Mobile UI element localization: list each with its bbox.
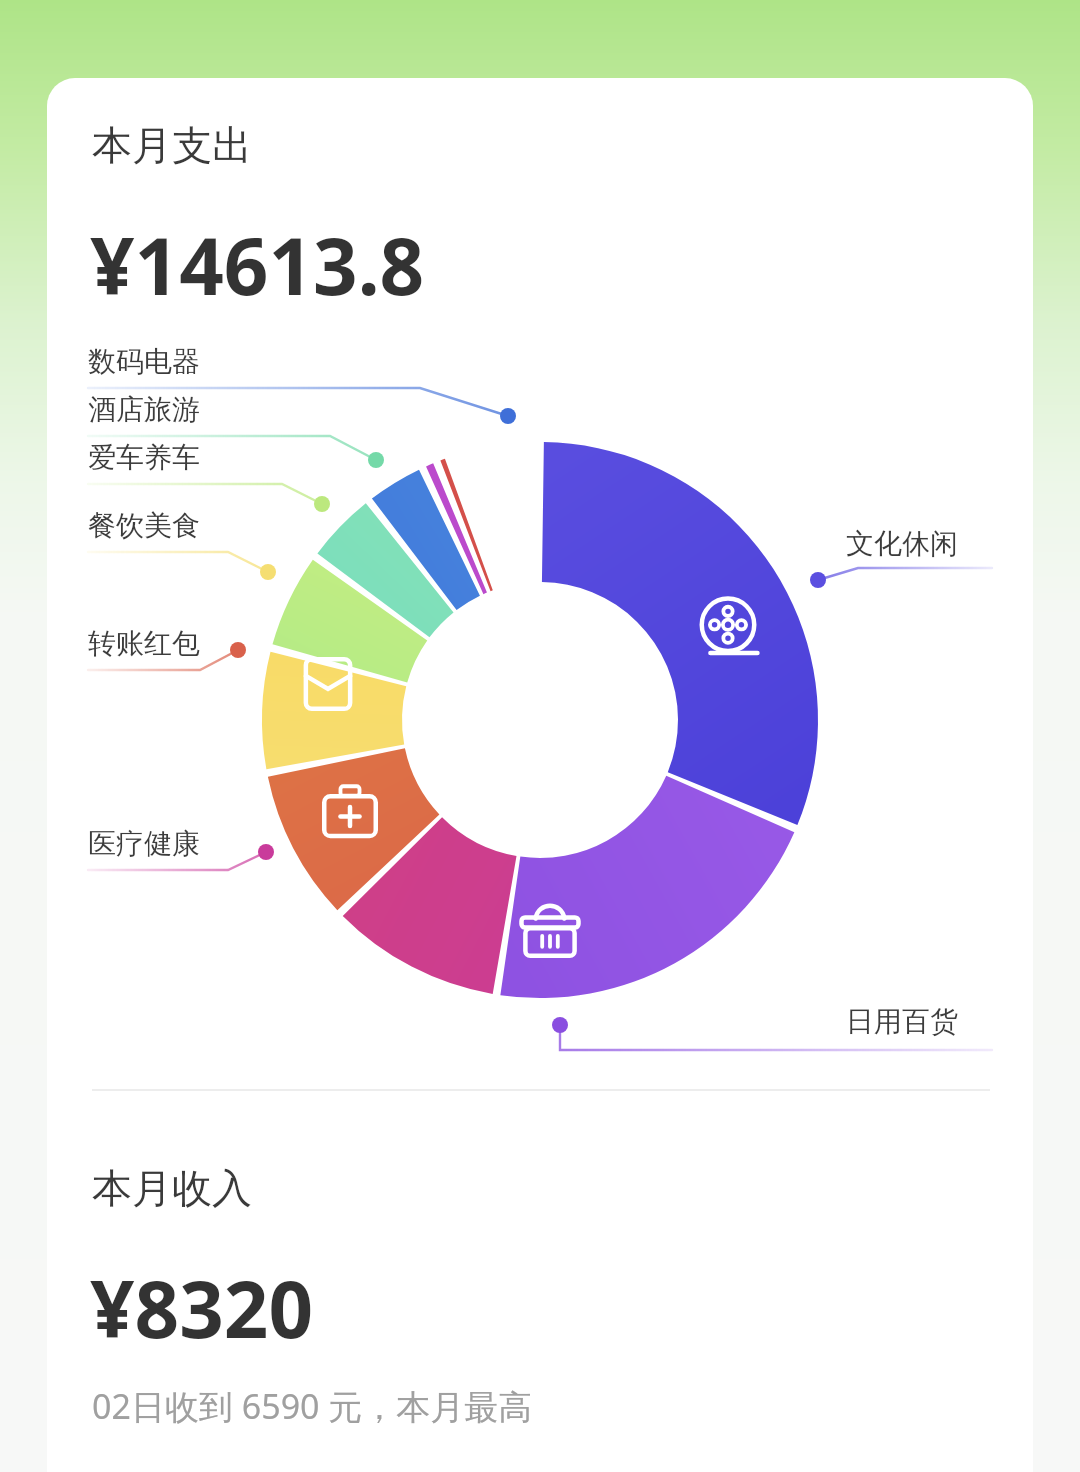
button[interactable]: [47, 78, 1033, 1472]
staticText: ¥8320: [90, 1255, 314, 1361]
staticText: ¥14613.8: [90, 212, 425, 318]
staticText: 文化休闲: [846, 526, 958, 561]
other: 本月支出分类环形图: [0, 0, 1080, 1472]
staticText: 本月收入: [92, 1163, 252, 1213]
staticText: 数码电器: [88, 344, 200, 379]
staticText: 本月支出: [92, 120, 252, 170]
button[interactable]: 数码电器: [88, 344, 200, 379]
staticText: 酒店旅游: [88, 392, 200, 427]
button[interactable]: 爱车养车: [88, 440, 200, 475]
staticText: 02日收到 6590 元，本月最高: [92, 1383, 533, 1429]
button[interactable]: 日用百货: [846, 1004, 958, 1039]
staticText: 餐饮美食: [88, 508, 200, 543]
button[interactable]: 转账红包: [88, 626, 200, 661]
button[interactable]: 餐饮美食: [88, 508, 200, 543]
button[interactable]: 文化休闲: [846, 526, 958, 561]
staticText: 爱车养车: [88, 440, 200, 475]
staticText: 转账红包: [88, 626, 200, 661]
staticText: 日用百货: [846, 1004, 958, 1039]
button[interactable]: 酒店旅游: [88, 392, 200, 427]
button[interactable]: 医疗健康: [88, 826, 200, 861]
staticText: 医疗健康: [88, 826, 200, 861]
